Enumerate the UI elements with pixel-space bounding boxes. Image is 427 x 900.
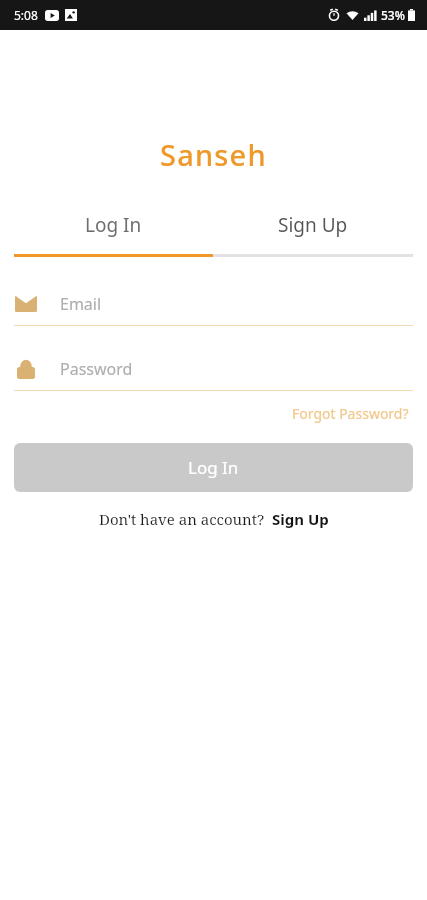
button[interactable]: Password	[14, 348, 413, 391]
staticText: 5:08	[14, 7, 38, 23]
button[interactable]: Sign Up	[213, 206, 413, 244]
staticText: Password	[60, 358, 133, 380]
button[interactable]: Log In	[14, 443, 413, 492]
staticText: Log In	[85, 212, 142, 238]
staticText: Sign Up	[272, 509, 329, 529]
other: Email	[14, 292, 38, 316]
other: Password	[14, 357, 38, 381]
staticText: Sanseh	[160, 135, 267, 174]
button[interactable]: Log In	[14, 206, 213, 244]
staticText: Sign Up	[278, 212, 348, 238]
staticText: Email	[60, 293, 102, 315]
staticText: Log In	[188, 456, 239, 479]
button[interactable]: Forgot Password?	[288, 401, 413, 426]
button[interactable]: Sign Up	[272, 509, 329, 529]
staticText: 53%	[381, 7, 405, 23]
staticText: Forgot Password?	[292, 404, 409, 423]
button[interactable]: Email	[14, 283, 413, 326]
staticText: Don't have an account?	[99, 509, 265, 529]
